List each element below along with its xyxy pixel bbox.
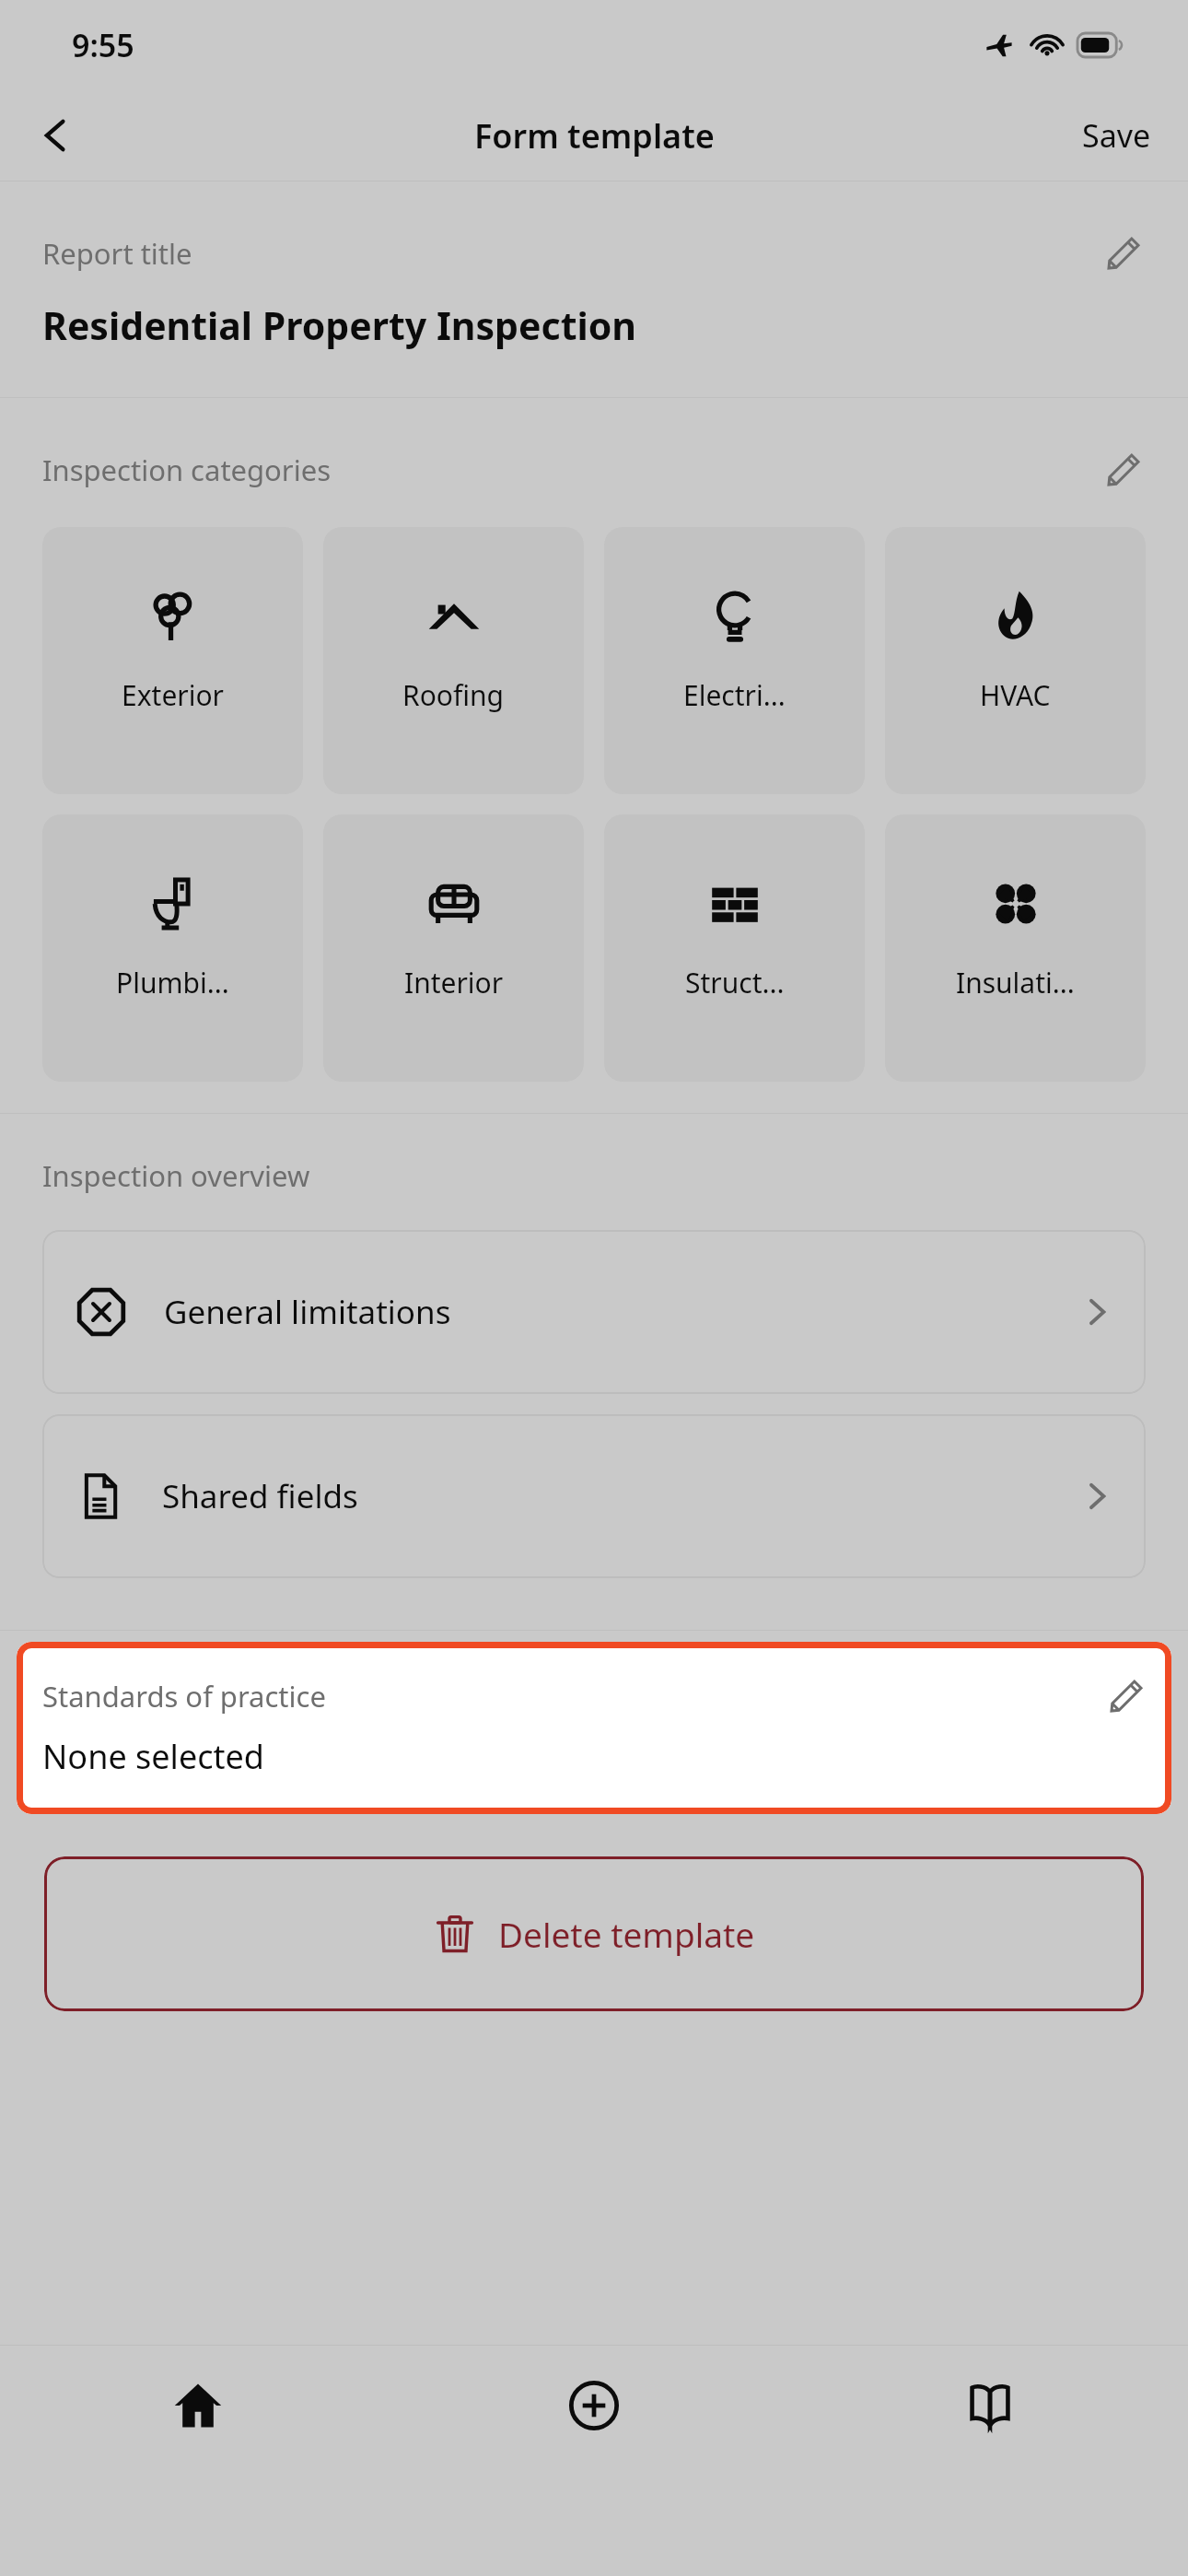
button[interactable]: Shared fields	[42, 1414, 1146, 1578]
button[interactable]: Exterior	[42, 527, 303, 794]
button[interactable]: Roofing	[323, 527, 584, 794]
staticText: HVAC	[980, 676, 1051, 714]
staticText: Report title	[42, 234, 192, 273]
staticText: Delete template	[498, 1911, 755, 1957]
button[interactable]: Standards of practice	[17, 1642, 1171, 1814]
staticText: Shared fields	[162, 1474, 358, 1518]
staticText: Struct...	[685, 964, 785, 1001]
button[interactable]: HVAC	[885, 527, 1146, 794]
staticText: Plumbi...	[116, 964, 229, 1001]
button[interactable]: General limitations	[42, 1230, 1146, 1394]
staticText: Save	[1082, 114, 1151, 157]
staticText: Form template	[474, 113, 715, 158]
staticText: Electri...	[683, 676, 786, 714]
button[interactable]: Library	[792, 2346, 1188, 2576]
button[interactable]: Edit report title	[1096, 226, 1151, 281]
button[interactable]: Plumbi...	[42, 814, 303, 1082]
button[interactable]: Save	[1073, 103, 1160, 168]
button[interactable]: Edit categories	[1096, 442, 1151, 498]
button[interactable]: Back	[22, 102, 88, 169]
button[interactable]: Interior	[323, 814, 584, 1082]
staticText: Inspection overview	[42, 1156, 310, 1195]
staticText: Inspection categories	[42, 451, 332, 489]
button[interactable]: Home	[0, 2346, 396, 2576]
staticText: Insulati...	[956, 964, 1075, 1001]
staticText: General limitations	[164, 1290, 451, 1334]
button[interactable]: Electri...	[604, 527, 865, 794]
staticText: Exterior	[122, 676, 224, 714]
button[interactable]: Insulati...	[885, 814, 1146, 1082]
button[interactable]: Add	[396, 2346, 792, 2576]
staticText: None selected	[42, 1734, 264, 1779]
button[interactable]: Struct...	[604, 814, 865, 1082]
staticText: Roofing	[402, 676, 505, 714]
staticText: Interior	[404, 964, 504, 1001]
staticText: 9:55	[72, 24, 134, 66]
staticText: Standards of practice	[42, 1677, 326, 1715]
staticText: Residential Property Inspection	[42, 299, 636, 351]
button[interactable]: Delete template	[44, 1856, 1144, 2011]
